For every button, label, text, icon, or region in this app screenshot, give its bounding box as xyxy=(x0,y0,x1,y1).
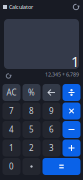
staticText: 6 xyxy=(49,124,54,135)
button[interactable]: 0 xyxy=(2,158,20,175)
button[interactable]: 4 xyxy=(2,121,20,138)
button[interactable]: Menu xyxy=(0,1,9,13)
button[interactable]: 1 xyxy=(2,139,20,156)
button[interactable]: % xyxy=(22,84,40,101)
button[interactable]: Decimal point xyxy=(22,158,40,175)
staticText: 1 xyxy=(9,143,14,153)
button[interactable]: Equals xyxy=(42,158,80,175)
button[interactable]: 7 xyxy=(2,102,20,119)
button[interactable]: 3 xyxy=(42,139,60,156)
button[interactable]: 9 xyxy=(42,102,60,119)
staticText: 1 xyxy=(71,51,79,71)
staticText: 8 xyxy=(29,106,34,116)
staticText: 2 xyxy=(29,143,34,153)
button[interactable]: 8 xyxy=(22,102,40,119)
staticText: 12,345 + 6,789 xyxy=(45,71,79,78)
staticText: AC xyxy=(6,87,16,98)
button[interactable]: History xyxy=(69,0,83,14)
button[interactable]: Show history xyxy=(3,69,12,79)
staticText: 7 xyxy=(9,106,14,116)
staticText: % xyxy=(28,87,35,98)
staticText: 5 xyxy=(29,124,34,135)
staticText: 0 xyxy=(9,161,14,172)
button[interactable]: Delete xyxy=(42,84,60,101)
staticText: 9 xyxy=(49,106,54,116)
staticText: Calculator xyxy=(9,3,33,11)
button[interactable]: Subtract xyxy=(62,121,80,138)
button[interactable]: Multiply xyxy=(62,102,80,119)
button[interactable]: 5 xyxy=(22,121,40,138)
button[interactable]: Divide xyxy=(62,84,80,101)
button[interactable]: AC xyxy=(2,84,20,101)
button[interactable]: 2 xyxy=(22,139,40,156)
staticText: 3 xyxy=(49,143,54,153)
button[interactable]: 6 xyxy=(42,121,60,138)
staticText: 4 xyxy=(9,124,14,135)
button[interactable]: Add xyxy=(62,139,80,156)
